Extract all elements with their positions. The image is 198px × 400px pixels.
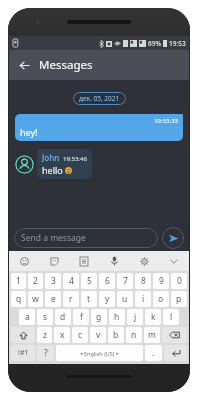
- staticText: 9: [159, 275, 164, 287]
- button[interactable]: John: [37, 149, 92, 179]
- button[interactable]: a: [19, 309, 35, 325]
- button[interactable]: Send a message: [14, 228, 158, 248]
- button[interactable]: l: [163, 309, 179, 325]
- staticText: p: [176, 293, 182, 305]
- staticText: 4: [69, 275, 74, 287]
- staticText: 69%: [148, 39, 161, 48]
- staticText: d: [60, 311, 66, 323]
- staticText: дек. 05, 2021: [79, 94, 120, 103]
- button[interactable]: g: [91, 309, 107, 325]
- button[interactable]: 7: [117, 273, 133, 289]
- staticText: 7: [123, 275, 128, 287]
- staticText: u: [122, 293, 128, 305]
- button[interactable]: m: [144, 327, 160, 343]
- staticText: 19:53:33: [20, 117, 178, 125]
- button[interactable]: h: [109, 309, 125, 325]
- staticText: e: [51, 293, 56, 305]
- button[interactable]: 3: [45, 273, 61, 289]
- button[interactable]: q: [11, 291, 26, 307]
- staticText: a: [25, 311, 30, 323]
- button[interactable]: Clipboard: [69, 251, 99, 271]
- staticText: k: [151, 311, 156, 323]
- staticText: v: [96, 329, 101, 341]
- button[interactable]: 4: [63, 273, 79, 289]
- button[interactable]: Enter: [164, 345, 187, 361]
- staticText: English (US): [84, 350, 115, 357]
- staticText: Messages: [39, 57, 93, 73]
- staticText: z: [43, 329, 47, 341]
- button[interactable]: d: [55, 309, 71, 325]
- button[interactable]: ?: [37, 345, 54, 361]
- staticText: 2: [33, 275, 38, 287]
- button[interactable]: Contact avatar: [15, 155, 34, 174]
- staticText: ▸: [115, 350, 119, 357]
- button[interactable]: v: [90, 327, 106, 343]
- staticText: 6: [105, 275, 110, 287]
- button[interactable]: Send: [162, 227, 184, 249]
- button[interactable]: 1: [11, 273, 26, 289]
- button[interactable]: u: [117, 291, 133, 307]
- staticText: n: [131, 329, 137, 341]
- button[interactable]: Emoji: [9, 251, 39, 271]
- button[interactable]: Back: [13, 54, 35, 76]
- button[interactable]: Voice input: [99, 251, 129, 271]
- staticText: t: [87, 293, 91, 305]
- button[interactable]: b: [108, 327, 124, 343]
- button[interactable]: r: [63, 291, 79, 307]
- staticText: John: [42, 152, 60, 163]
- staticText: .: [152, 347, 155, 359]
- button[interactable]: 5: [81, 273, 97, 289]
- staticText: 3: [51, 275, 56, 287]
- button[interactable]: p: [171, 291, 187, 307]
- button[interactable]: Backspace: [162, 327, 187, 343]
- button[interactable]: k: [145, 309, 161, 325]
- button[interactable]: 0: [171, 273, 187, 289]
- button[interactable]: f: [73, 309, 89, 325]
- button[interactable]: 6: [99, 273, 115, 289]
- button[interactable]: ◂: [56, 345, 143, 361]
- button[interactable]: .: [145, 345, 162, 361]
- staticText: y: [105, 293, 110, 305]
- button[interactable]: z: [37, 327, 52, 343]
- staticText: hello: [42, 164, 63, 176]
- staticText: 19:53: [169, 39, 186, 48]
- button[interactable]: Shift: [11, 327, 35, 343]
- staticText: h: [114, 311, 120, 323]
- button[interactable]: 2: [28, 273, 43, 289]
- button[interactable]: j: [127, 309, 143, 325]
- staticText: ?: [44, 347, 48, 359]
- staticText: 19:53:46: [63, 155, 87, 163]
- staticText: Send a message: [21, 232, 86, 244]
- staticText: m: [148, 329, 156, 341]
- button[interactable]: o: [153, 291, 169, 307]
- staticText: !#1: [18, 348, 29, 358]
- button[interactable]: !#1: [11, 345, 35, 361]
- staticText: i: [142, 293, 145, 305]
- staticText: 8: [141, 275, 146, 287]
- button[interactable]: w: [28, 291, 43, 307]
- button[interactable]: s: [37, 309, 53, 325]
- staticText: l: [170, 311, 173, 323]
- staticText: b: [113, 329, 119, 341]
- button[interactable]: 19:53:33: [15, 114, 183, 141]
- staticText: s: [43, 311, 48, 323]
- button[interactable]: y: [99, 291, 115, 307]
- button[interactable]: Settings: [129, 251, 159, 271]
- staticText: o: [158, 293, 164, 305]
- button[interactable]: t: [81, 291, 97, 307]
- button[interactable]: Hide keyboard: [159, 251, 189, 271]
- button[interactable]: i: [135, 291, 151, 307]
- button[interactable]: дек. 05, 2021: [73, 92, 126, 105]
- button[interactable]: 9: [153, 273, 169, 289]
- staticText: q: [16, 293, 22, 305]
- button[interactable]: 8: [135, 273, 151, 289]
- staticText: ◂: [80, 350, 84, 357]
- button[interactable]: n: [126, 327, 142, 343]
- button[interactable]: c: [72, 327, 88, 343]
- button[interactable]: x: [54, 327, 70, 343]
- staticText: 1: [16, 275, 21, 287]
- staticText: r: [69, 293, 73, 305]
- button[interactable]: e: [45, 291, 61, 307]
- button[interactable]: Stickers: [39, 251, 69, 271]
- staticText: w: [32, 293, 39, 305]
